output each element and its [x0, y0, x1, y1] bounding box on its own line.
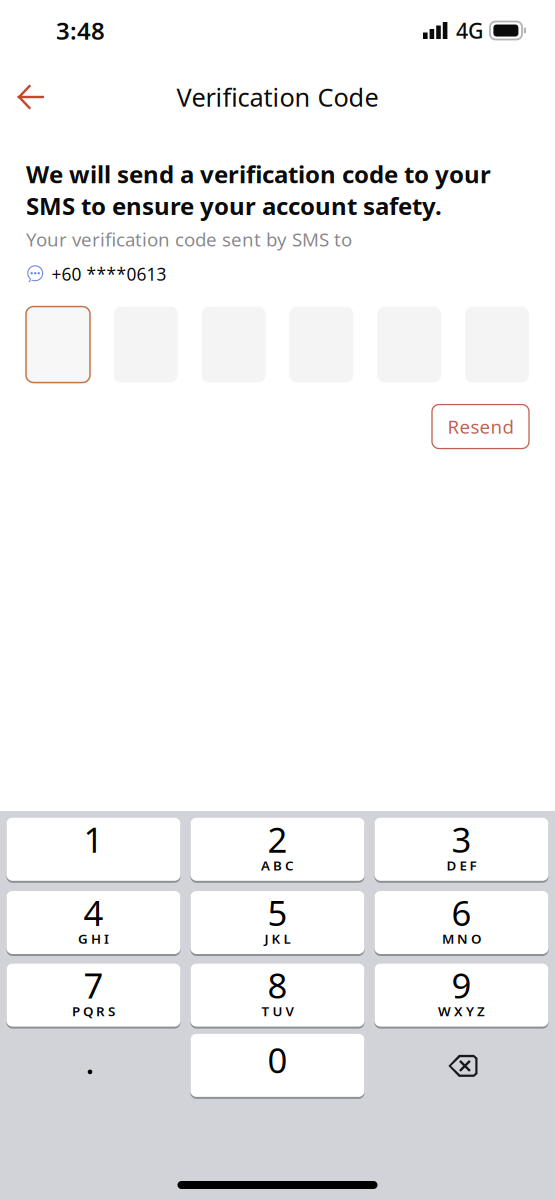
staticText: 3 — [451, 816, 471, 862]
staticText: 3:48 — [56, 15, 105, 46]
staticText: 9 — [451, 962, 471, 1008]
button[interactable]: 7 — [6, 964, 180, 1027]
button[interactable]: Back — [0, 73, 62, 121]
staticText: +60 ****0613 — [51, 262, 166, 285]
button[interactable]: 9 — [374, 964, 548, 1027]
staticText: 5 — [267, 889, 287, 935]
staticText: Your verification code sent by SMS to — [26, 227, 352, 251]
staticText: 1 — [83, 816, 103, 862]
button[interactable]: 3 — [374, 818, 548, 881]
staticText: J K L — [264, 930, 290, 947]
staticText: Verification Code — [176, 80, 378, 114]
staticText: 4 — [83, 889, 103, 935]
button[interactable]: 6 — [374, 891, 548, 954]
button[interactable]: Delete — [447, 1054, 479, 1079]
button[interactable]: Resend — [432, 405, 529, 449]
button[interactable]: 5 — [190, 891, 364, 954]
button[interactable]: 4 — [6, 891, 180, 954]
staticText: 0 — [267, 1037, 287, 1083]
staticText: 2 — [267, 816, 287, 862]
staticText: P Q R S — [72, 1002, 115, 1020]
staticText: 4G — [456, 16, 484, 45]
staticText: A B C — [261, 856, 294, 874]
staticText: We will send a verification code to your… — [26, 158, 491, 222]
button[interactable]: 0 — [190, 1034, 364, 1097]
button[interactable]: 8 — [190, 964, 364, 1027]
staticText: G H I — [78, 930, 109, 947]
staticText: W X Y Z — [438, 1002, 485, 1020]
staticText: Resend — [447, 414, 513, 439]
staticText: T U V — [261, 1002, 293, 1020]
button[interactable]: 2 — [190, 818, 364, 881]
staticText: 8 — [267, 962, 287, 1008]
staticText: M N O — [442, 930, 481, 947]
staticText: 7 — [83, 962, 103, 1008]
staticText: D E F — [446, 856, 476, 874]
button[interactable]: Decimal point — [6, 1034, 180, 1097]
button[interactable]: 1 — [6, 818, 180, 881]
button[interactable]: Digit 1 — [26, 307, 90, 383]
staticText: 6 — [451, 889, 471, 935]
